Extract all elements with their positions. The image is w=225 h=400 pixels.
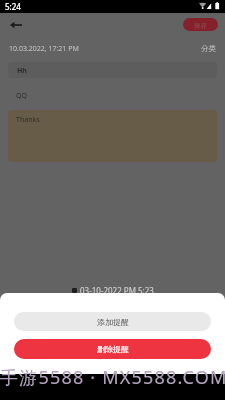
staticText: 手游5588 · MX5588.COM	[0, 365, 225, 390]
staticText: QQ	[16, 91, 27, 101]
staticText: 10.03.2022, 17:21 PM	[9, 44, 79, 54]
staticText: Hh	[17, 66, 27, 76]
button[interactable]: 03-10-2022 PM 5:23	[0, 284, 225, 295]
staticText: 5:24	[5, 1, 21, 12]
button[interactable]: Back	[4, 14, 28, 36]
button[interactable]: QQ	[16, 91, 27, 101]
button[interactable]: 删除提醒	[14, 339, 211, 359]
staticText: 03-10-2022 PM 5:23	[80, 285, 154, 296]
staticText: Thanks	[16, 115, 40, 125]
button[interactable]: 分类	[201, 44, 216, 53]
button[interactable]: 添加提醒	[14, 312, 211, 331]
staticText: 保存	[194, 22, 207, 30]
staticText: 删除提醒	[97, 344, 129, 354]
button[interactable]: Hh	[8, 62, 217, 78]
staticText: 分类	[201, 44, 216, 53]
button[interactable]: 保存	[183, 18, 218, 31]
staticText: 添加提醒	[97, 317, 129, 327]
